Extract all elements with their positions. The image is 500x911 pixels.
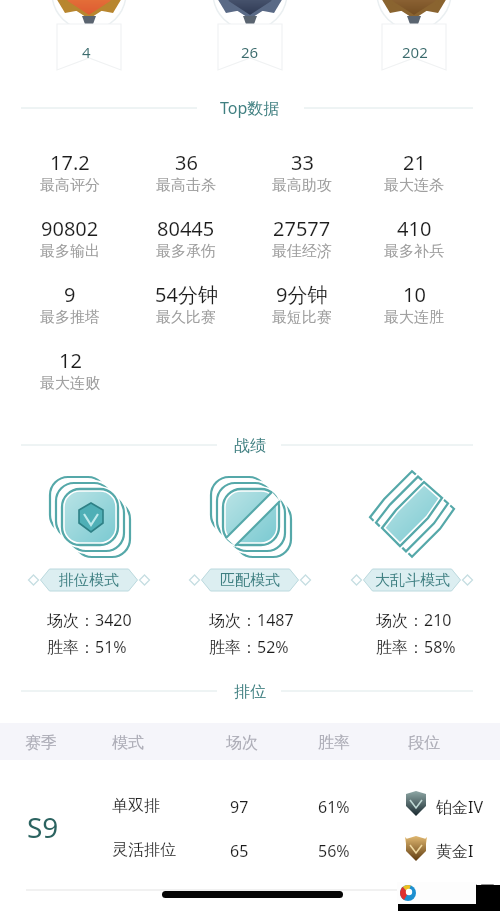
- staticText: 65: [230, 840, 249, 862]
- staticText: 56%: [318, 840, 350, 862]
- staticText: 36: [175, 149, 198, 176]
- staticText: 灵活排位: [112, 840, 176, 860]
- staticText: 61%: [318, 796, 350, 818]
- staticText: 铂金IV: [436, 796, 484, 818]
- staticText: 17.2: [50, 149, 90, 176]
- staticText: 最大连杀: [384, 176, 444, 195]
- staticText: 9分钟: [276, 281, 328, 308]
- staticText: 10: [403, 281, 426, 308]
- staticText: 97: [230, 796, 249, 818]
- staticText: 排位: [234, 682, 266, 702]
- staticText: 战绩: [234, 436, 266, 456]
- staticText: 最大连胜: [384, 308, 444, 327]
- staticText: 胜率：51%: [47, 636, 127, 658]
- staticText: 90802: [41, 215, 99, 242]
- staticText: 场次：1487: [209, 609, 294, 631]
- staticText: 4: [82, 42, 91, 62]
- staticText: 场次: [226, 733, 258, 753]
- staticText: 27577: [273, 215, 331, 242]
- staticText: 最久比赛: [156, 308, 216, 327]
- staticText: 最大连败: [40, 374, 100, 393]
- staticText: 胜率：58%: [376, 636, 456, 658]
- staticText: 最多补兵: [384, 242, 444, 261]
- staticText: 54分钟: [155, 281, 218, 308]
- staticText: 匹配模式: [220, 571, 280, 590]
- staticText: 80445: [157, 215, 215, 242]
- staticText: 410: [397, 215, 432, 242]
- staticText: 最佳经济: [272, 242, 332, 261]
- staticText: 胜率：52%: [209, 636, 289, 658]
- staticText: 最多输出: [40, 242, 100, 261]
- staticText: 排位模式: [59, 571, 119, 590]
- staticText: 最多推塔: [40, 308, 100, 327]
- staticText: 12: [59, 347, 82, 374]
- staticText: 场次：210: [376, 609, 452, 631]
- staticText: 大乱斗模式: [375, 571, 450, 590]
- staticText: 最高评分: [40, 176, 100, 195]
- staticText: 单双排: [112, 796, 160, 816]
- staticText: 21: [403, 149, 426, 176]
- staticText: S9: [27, 808, 59, 846]
- staticText: 场次：3420: [47, 609, 132, 631]
- staticText: 9: [64, 281, 76, 308]
- staticText: Top数据: [220, 97, 280, 119]
- staticText: 黄金I: [436, 840, 474, 862]
- staticText: 赛季: [25, 733, 57, 753]
- staticText: 华南手游网: [420, 883, 495, 902]
- staticText: 最高击杀: [156, 176, 216, 195]
- staticText: 模式: [112, 733, 144, 753]
- staticText: 最高助攻: [272, 176, 332, 195]
- staticText: 最多承伤: [156, 242, 216, 261]
- staticText: 33: [291, 149, 314, 176]
- staticText: 26: [241, 42, 259, 62]
- staticText: 最短比赛: [272, 308, 332, 327]
- staticText: 段位: [408, 733, 440, 753]
- staticText: 胜率: [318, 733, 350, 753]
- staticText: 202: [402, 42, 428, 62]
